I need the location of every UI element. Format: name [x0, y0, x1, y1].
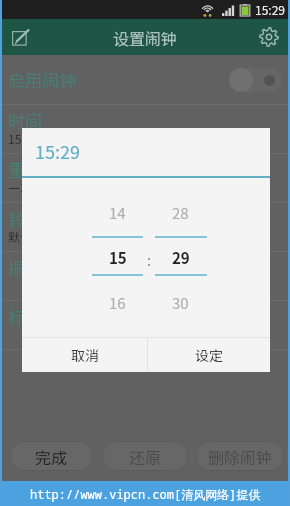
staticText: 振动 — [8, 255, 42, 280]
staticText: 时间 — [8, 108, 42, 133]
button[interactable]: Settings — [255, 23, 283, 51]
staticText: 30 — [172, 292, 189, 312]
staticText: 删除闹钟 — [208, 445, 273, 468]
button[interactable]: 取消 — [22, 338, 147, 372]
button[interactable]: 30 — [154, 292, 207, 312]
staticText: 15 — [109, 247, 127, 267]
staticText: 16 — [109, 292, 126, 312]
staticText: 完成 — [35, 445, 68, 468]
staticText: 15:29 — [8, 130, 38, 147]
button[interactable]: 15 — [91, 247, 144, 267]
button[interactable]: 标签 — [0, 301, 290, 349]
staticText: 15:29 — [35, 138, 80, 164]
button[interactable]: Edit alarm — [6, 22, 36, 52]
button[interactable]: 设定 — [148, 338, 270, 372]
button[interactable]: 启用闹钟 — [0, 55, 290, 104]
staticText: 14 — [109, 202, 126, 222]
button[interactable]: 28 — [154, 202, 207, 222]
staticText: 重复 — [8, 157, 42, 182]
button[interactable]: 还原 — [102, 441, 188, 471]
button[interactable]: 14 — [91, 202, 144, 222]
staticText: 设定 — [195, 345, 223, 365]
button[interactable]: 铃声 — [0, 203, 290, 251]
staticText: 设置闹钟 — [113, 26, 178, 49]
staticText: 标签 — [8, 304, 42, 329]
staticText: 取消 — [71, 345, 99, 365]
staticText: 默认铃声 — [8, 228, 57, 245]
staticText: 启用闹钟 — [8, 67, 76, 92]
button[interactable]: 16 — [91, 292, 144, 312]
staticText: http://www.vipcn.com[清风网络]提供 — [30, 486, 261, 502]
staticText: 一次 — [8, 179, 33, 196]
staticText: 15:29 — [255, 1, 285, 18]
staticText: 还原 — [129, 445, 162, 468]
button[interactable]: 29 — [154, 247, 207, 267]
button[interactable]: 重复 — [0, 154, 290, 202]
staticText: 28 — [172, 202, 189, 222]
staticText: 铃声 — [8, 206, 42, 231]
button[interactable]: 删除闹钟 — [196, 441, 284, 471]
staticText: 29 — [172, 247, 190, 267]
button[interactable]: 振动 — [0, 252, 290, 300]
button[interactable]: 时间 — [0, 105, 290, 153]
staticText: : — [147, 249, 152, 267]
button[interactable]: 完成 — [9, 441, 93, 471]
